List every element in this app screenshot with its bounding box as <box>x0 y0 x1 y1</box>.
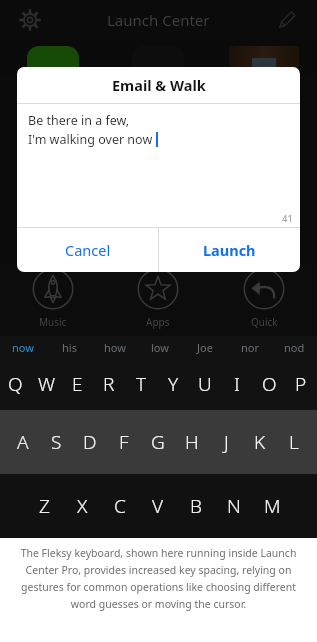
staticText: M <box>264 493 281 519</box>
staticText: I'm walking over now <box>28 131 153 148</box>
staticText: V <box>152 493 164 519</box>
button[interactable]: W <box>31 358 62 410</box>
button[interactable]: E <box>62 358 93 410</box>
button[interactable]: nod <box>272 336 317 358</box>
staticText: Quick <box>251 315 278 329</box>
button[interactable]: Joe <box>182 336 227 358</box>
button[interactable]: P <box>285 358 317 410</box>
staticText: J <box>224 429 229 455</box>
staticText: I <box>234 371 240 397</box>
button[interactable]: S <box>39 410 73 474</box>
button[interactable]: M <box>253 474 291 538</box>
button[interactable]: B <box>177 474 215 538</box>
button[interactable]: Edit <box>271 4 303 36</box>
staticText: N <box>227 493 241 519</box>
button[interactable]: R <box>93 358 125 410</box>
staticText: Launch Center <box>107 10 210 30</box>
staticText: A <box>17 429 29 455</box>
staticText: Q <box>8 371 23 397</box>
staticText: Cancel <box>65 240 111 260</box>
button[interactable]: X <box>63 474 101 538</box>
button[interactable]: D <box>73 410 107 474</box>
staticText: 41 <box>282 212 293 225</box>
staticText: E <box>72 371 83 397</box>
staticText: W <box>38 371 56 397</box>
staticText: Y <box>168 371 179 397</box>
button[interactable]: T <box>125 358 157 410</box>
button[interactable]: Cancel <box>17 228 158 272</box>
button[interactable]: A <box>6 410 39 474</box>
staticText: R <box>103 371 115 397</box>
button[interactable]: now <box>0 336 46 358</box>
button[interactable]: J <box>209 410 243 474</box>
staticText: Apps <box>146 315 170 329</box>
staticText: F <box>119 429 129 455</box>
button[interactable]: F <box>107 410 141 474</box>
staticText: Email & Walk <box>112 75 206 95</box>
button[interactable]: I <box>221 358 253 410</box>
staticText: now <box>12 340 34 355</box>
staticText: his <box>62 340 77 355</box>
button[interactable]: V <box>139 474 177 538</box>
button[interactable]: Launch <box>159 228 300 272</box>
button[interactable]: Apps <box>105 265 211 337</box>
button[interactable]: how <box>92 336 137 358</box>
staticText: P <box>295 371 307 397</box>
staticText: nod <box>284 340 305 355</box>
staticText: T <box>136 371 147 397</box>
staticText: L <box>289 429 299 455</box>
button[interactable]: C <box>101 474 139 538</box>
staticText: Music <box>39 315 67 329</box>
button[interactable]: Music <box>0 265 105 337</box>
staticText: H <box>185 429 199 455</box>
button[interactable]: H <box>175 410 209 474</box>
staticText: X <box>77 493 88 519</box>
staticText: K <box>254 429 266 455</box>
staticText: nor <box>241 340 259 355</box>
button[interactable]: L <box>277 410 311 474</box>
button[interactable]: his <box>46 336 92 358</box>
button[interactable]: Q <box>0 358 31 410</box>
staticText: C <box>114 493 126 519</box>
button[interactable]: K <box>243 410 277 474</box>
staticText: B <box>190 493 202 519</box>
button[interactable]: Quick <box>211 265 317 337</box>
staticText: Be there in a few, <box>28 112 130 129</box>
button[interactable]: Z <box>26 474 63 538</box>
staticText: The Fleksy keyboard, shown here running … <box>12 546 305 611</box>
button[interactable]: low <box>137 336 182 358</box>
button[interactable]: U <box>189 358 221 410</box>
staticText: Joe <box>197 340 213 355</box>
staticText: O <box>262 371 277 397</box>
staticText: G <box>151 429 165 455</box>
staticText: low <box>151 340 169 355</box>
button[interactable]: N <box>215 474 253 538</box>
staticText: D <box>83 429 97 455</box>
button[interactable]: nor <box>227 336 272 358</box>
staticText: Launch <box>203 240 256 260</box>
button[interactable]: Y <box>157 358 189 410</box>
staticText: U <box>198 371 212 397</box>
button[interactable]: O <box>253 358 285 410</box>
staticText: S <box>51 429 62 455</box>
staticText: how <box>104 340 126 355</box>
button[interactable]: Settings <box>14 4 46 36</box>
button[interactable]: G <box>141 410 175 474</box>
staticText: Z <box>39 493 50 519</box>
